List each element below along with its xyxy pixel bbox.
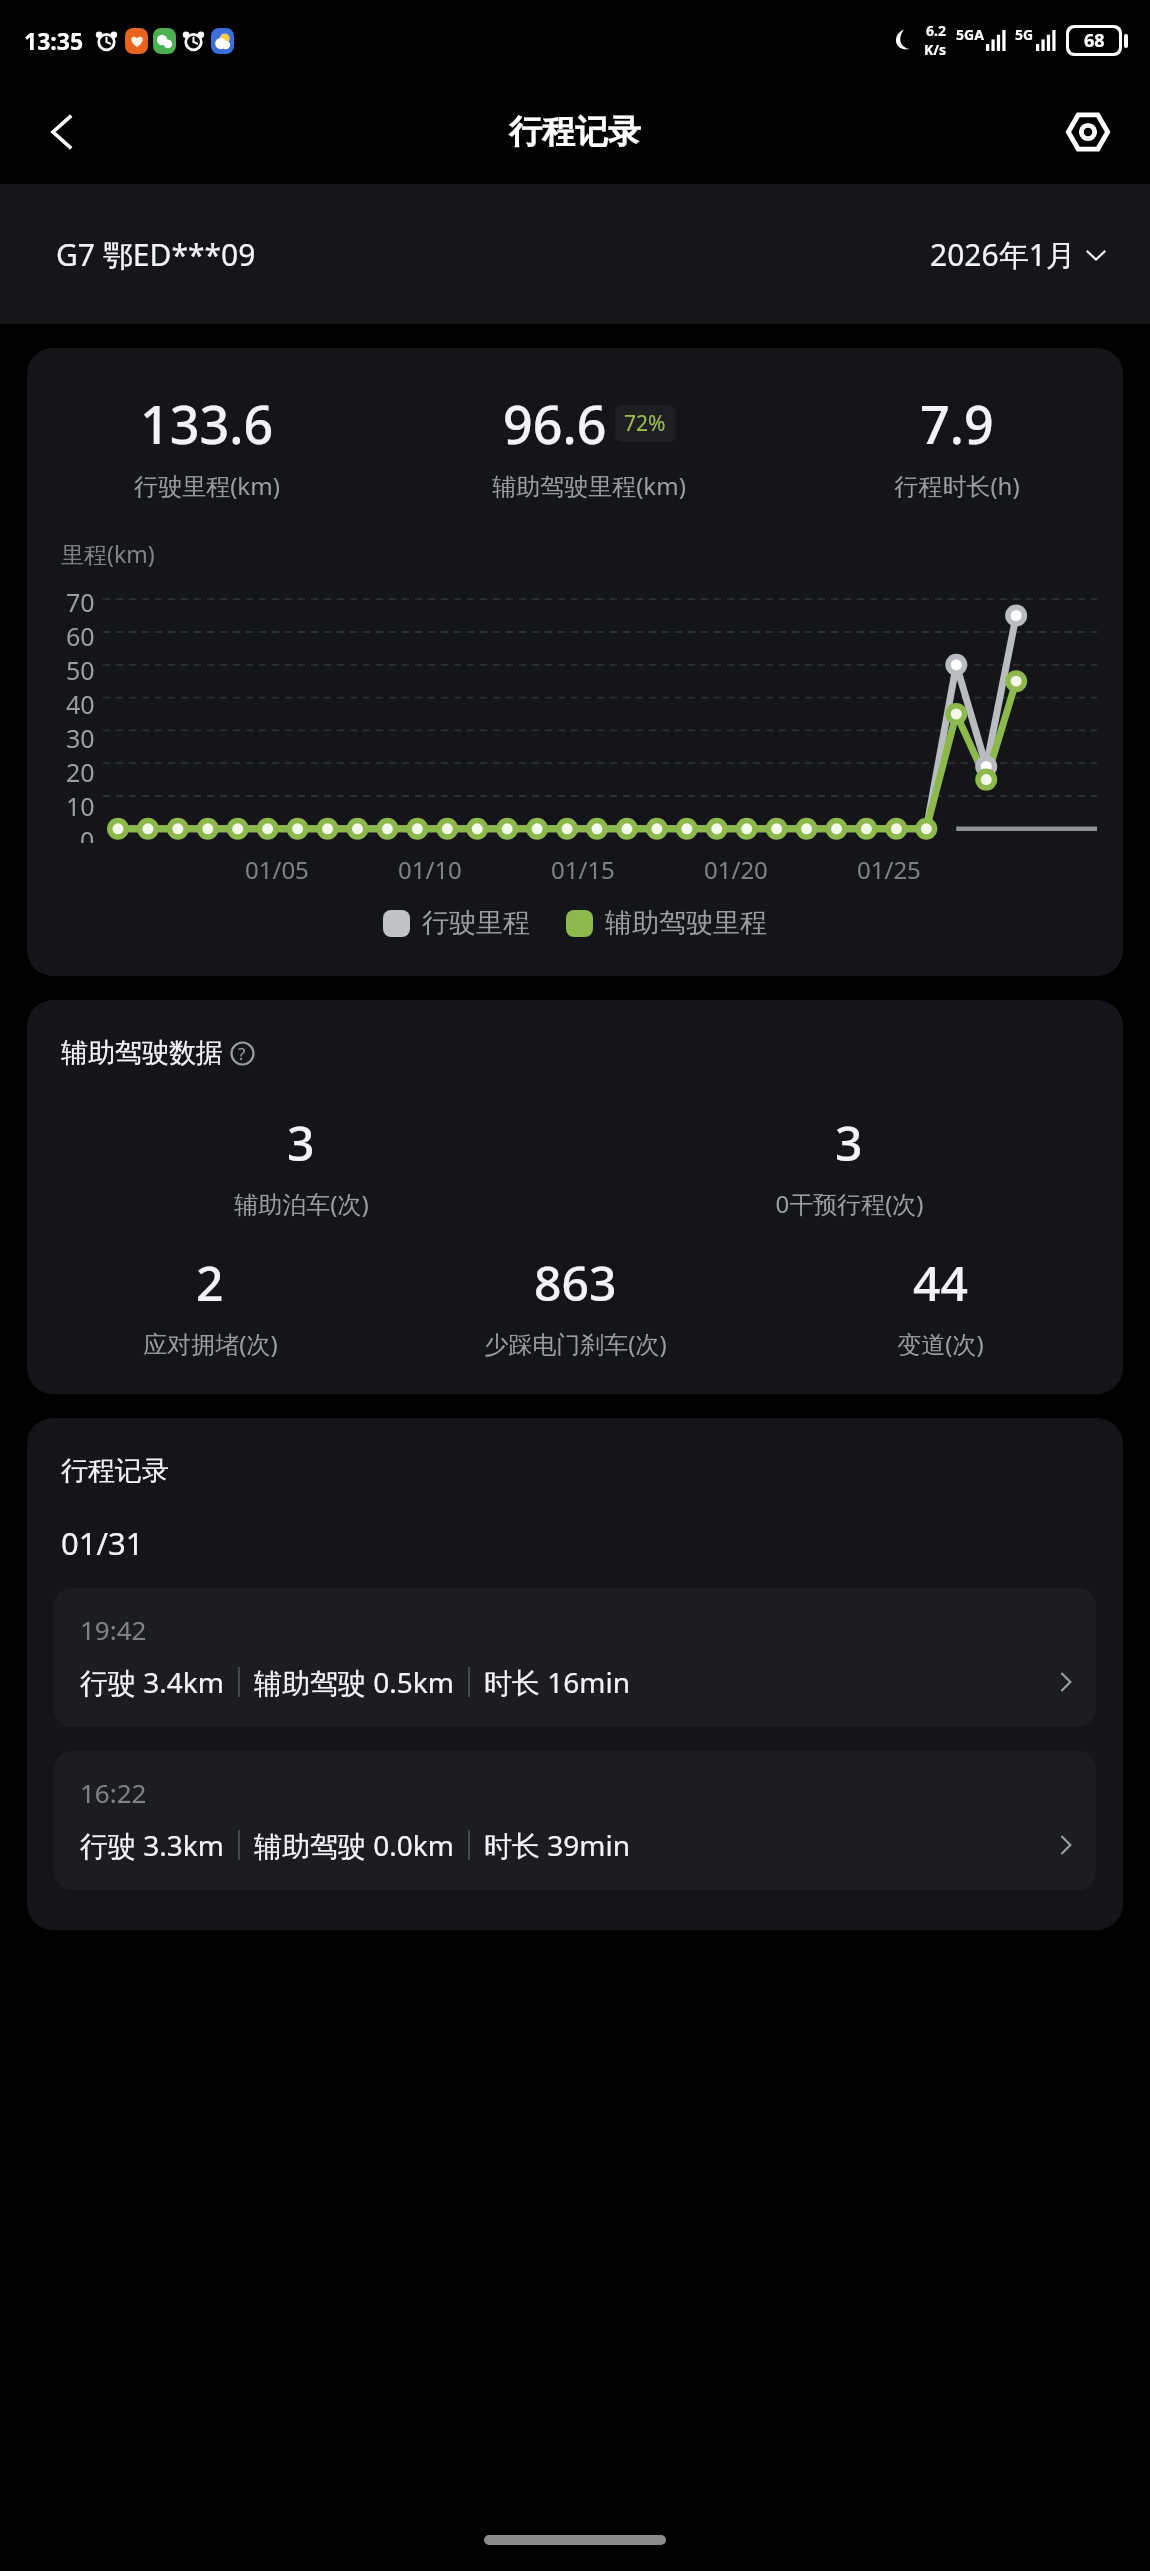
button[interactable]: 19:42 — [54, 1588, 1096, 1727]
staticText: 96.6 — [503, 388, 607, 459]
staticText: 里程(km) — [61, 538, 155, 569]
staticText: 20 — [66, 755, 95, 789]
staticText: 50 — [66, 653, 95, 687]
staticText: 行驶里程 — [422, 906, 530, 940]
staticText: 2026年1月 — [930, 234, 1076, 275]
button[interactable]: 133.6 — [27, 388, 387, 502]
staticText: 5G — [1015, 25, 1034, 44]
staticText: 7.9 — [920, 388, 994, 459]
staticText: 行驶 3.3km — [80, 1826, 224, 1864]
staticText: 13:35 — [24, 25, 84, 56]
staticText: 01/05 — [245, 853, 309, 886]
staticText: 行驶 3.4km — [80, 1663, 224, 1701]
staticText: 44 — [913, 1250, 968, 1315]
staticText: 19:42 — [80, 1612, 147, 1647]
staticText: 时长 39min — [484, 1826, 631, 1864]
button[interactable]: 说明 — [228, 1039, 256, 1067]
button[interactable]: 3 — [27, 1110, 575, 1220]
staticText: 辅助驾驶 0.5km — [254, 1663, 454, 1701]
staticText: 行程记录 — [61, 1454, 169, 1488]
staticText: 0 — [80, 823, 95, 843]
staticText: 时长 16min — [484, 1663, 631, 1701]
staticText: 3 — [287, 1110, 315, 1175]
staticText: 辅助驾驶里程 — [605, 906, 767, 940]
staticText: 3 — [835, 1110, 863, 1175]
button[interactable]: 863 — [393, 1250, 758, 1360]
staticText: 行程时长(h) — [894, 469, 1020, 502]
staticText: 72% — [624, 409, 666, 438]
button[interactable]: 设置 — [1056, 100, 1120, 164]
button[interactable]: 返回 — [30, 100, 94, 164]
staticText: 40 — [66, 687, 95, 721]
staticText: K/s — [924, 40, 947, 59]
staticText: 01/31 — [61, 1522, 144, 1564]
button[interactable]: 2 — [27, 1250, 393, 1360]
staticText: 辅助驾驶数据 — [61, 1036, 223, 1070]
staticText: 6.2 — [926, 21, 946, 40]
staticText: 0干预行程(次) — [775, 1187, 924, 1220]
staticText: 01/20 — [704, 853, 768, 886]
staticText: 辅助泊车(次) — [234, 1187, 369, 1220]
staticText: 变道(次) — [897, 1327, 984, 1360]
button[interactable]: 16:22 — [54, 1751, 1096, 1890]
staticText: 68 — [1084, 28, 1105, 53]
staticText: 应对拥堵(次) — [143, 1327, 278, 1360]
staticText: 133.6 — [140, 388, 274, 459]
staticText: 01/25 — [857, 853, 921, 886]
staticText: 60 — [66, 619, 95, 653]
staticText: 少踩电门刹车(次) — [484, 1327, 667, 1360]
staticText: 辅助驾驶 0.0km — [254, 1826, 454, 1864]
button[interactable]: 44 — [758, 1250, 1123, 1360]
staticText: ? — [238, 1042, 246, 1065]
staticText: 2 — [196, 1250, 224, 1315]
staticText: 16:22 — [80, 1775, 147, 1810]
staticText: 01/10 — [398, 853, 462, 886]
button[interactable]: 96.6 — [387, 388, 791, 502]
staticText: 863 — [534, 1250, 617, 1315]
staticText: 辅助驾驶里程(km) — [492, 469, 686, 502]
staticText: 行程记录 — [509, 111, 641, 153]
button[interactable]: 3 — [575, 1110, 1123, 1220]
button[interactable]: 7.9 — [791, 388, 1123, 502]
button[interactable]: G7 鄂ED***09 — [0, 184, 1150, 324]
staticText: G7 鄂ED***09 — [56, 234, 256, 275]
staticText: 30 — [66, 721, 95, 755]
staticText: 01/15 — [551, 853, 615, 886]
staticText: 行驶里程(km) — [134, 469, 280, 502]
button[interactable]: 2026年1月 — [930, 234, 1110, 275]
staticText: 70 — [66, 585, 95, 619]
staticText: 5GA — [956, 25, 984, 44]
staticText: 10 — [66, 789, 95, 823]
